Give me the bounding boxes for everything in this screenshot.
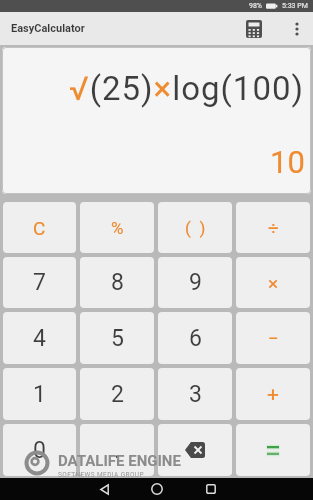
staticText: EasyCalculator	[11, 22, 85, 35]
button[interactable]: 0	[3, 424, 76, 476]
staticText: 5:33 PM	[282, 2, 308, 10]
staticText: .	[114, 437, 121, 464]
staticText: 0	[33, 437, 46, 464]
button[interactable]	[289, 21, 305, 37]
staticText: %	[111, 218, 124, 238]
button[interactable]: 7	[3, 257, 76, 308]
staticText: 5	[111, 325, 124, 352]
button[interactable]: .	[80, 424, 154, 476]
button[interactable]	[203, 481, 219, 497]
button[interactable]: 1	[3, 368, 76, 420]
button[interactable]: ( )	[158, 202, 232, 253]
staticText: +	[267, 382, 279, 407]
staticText: C	[33, 217, 46, 239]
button[interactable]	[96, 481, 112, 497]
staticText: ( )	[185, 218, 206, 238]
button[interactable]: 5	[80, 312, 154, 364]
button[interactable]: 9	[158, 257, 232, 308]
staticText: ×	[268, 272, 279, 294]
button[interactable]	[242, 17, 266, 41]
staticText: 9	[189, 269, 202, 296]
button[interactable]	[158, 424, 232, 476]
staticText: −	[268, 327, 279, 349]
staticText: √(25)×log(100)	[69, 69, 304, 108]
button[interactable]: 3	[158, 368, 232, 420]
button[interactable]: 2	[80, 368, 154, 420]
button[interactable]	[236, 424, 310, 476]
button[interactable]: −	[236, 312, 310, 364]
staticText: 4	[33, 325, 46, 352]
button[interactable]: 6	[158, 312, 232, 364]
staticText: 10	[270, 144, 305, 180]
button[interactable]: ÷	[236, 202, 310, 253]
staticText: 6	[189, 325, 202, 352]
staticText: SOFTNEWS MEDIA GROUP	[58, 471, 144, 479]
button[interactable]: 8	[80, 257, 154, 308]
staticText: 8	[111, 269, 124, 296]
staticText: 2	[111, 381, 124, 408]
button[interactable]: %	[80, 202, 154, 253]
staticText: 7	[33, 269, 46, 296]
button[interactable]: 4	[3, 312, 76, 364]
staticText: 1	[33, 381, 46, 408]
button[interactable]: ×	[236, 257, 310, 308]
staticText: 3	[189, 381, 202, 408]
button[interactable]: +	[236, 368, 310, 420]
staticText: DATALIFE ENGINE	[58, 452, 181, 470]
staticText: 98%	[249, 2, 262, 10]
button[interactable]	[149, 481, 165, 497]
staticText: ÷	[268, 217, 279, 239]
button[interactable]: C	[3, 202, 76, 253]
